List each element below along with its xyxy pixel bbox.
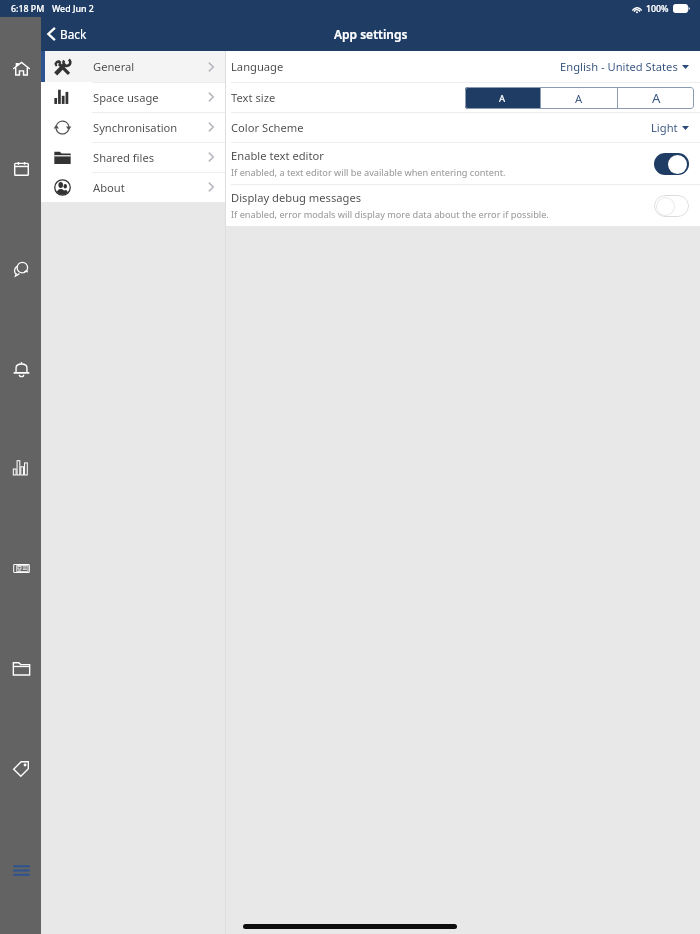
button[interactable]: Statistics xyxy=(5,452,37,484)
button[interactable]: A xyxy=(618,87,694,109)
staticText: Back xyxy=(60,26,87,42)
button[interactable]: Disabled xyxy=(654,195,689,217)
staticText: Space usage xyxy=(93,90,159,105)
button[interactable]: Calendar xyxy=(5,152,37,184)
button[interactable]: About xyxy=(41,172,225,202)
staticText: Color Scheme xyxy=(231,120,304,135)
button[interactable]: Files xyxy=(5,652,37,684)
staticText: A xyxy=(499,92,506,105)
staticText: 100% xyxy=(646,3,669,15)
button[interactable]: Space usage xyxy=(41,82,225,112)
staticText: Display debug messages xyxy=(231,190,362,205)
staticText: About xyxy=(93,180,125,195)
button[interactable]: Back xyxy=(41,21,97,47)
staticText: Synchronisation xyxy=(93,120,178,135)
staticText: Light xyxy=(651,120,678,135)
staticText: Enable text editor xyxy=(231,148,324,163)
staticText: If enabled, a text editor will be availa… xyxy=(231,166,506,179)
button[interactable]: A xyxy=(465,87,540,109)
button[interactable]: News xyxy=(5,552,37,584)
staticText: If enabled, error modals will display mo… xyxy=(231,208,549,221)
button[interactable]: A xyxy=(541,87,617,109)
button[interactable]: Tags xyxy=(5,752,37,784)
button[interactable]: Light xyxy=(645,116,689,139)
button[interactable]: Synchronisation xyxy=(41,112,225,142)
staticText: Shared files xyxy=(93,150,155,165)
staticText: A xyxy=(575,91,583,106)
staticText: Text size xyxy=(231,90,276,105)
button[interactable]: English - United States xyxy=(554,55,689,78)
staticText: Wed Jun 2 xyxy=(52,3,94,15)
staticText: General xyxy=(93,59,135,74)
button[interactable]: Home xyxy=(5,52,37,84)
staticText: Language xyxy=(231,59,284,74)
staticText: App settings xyxy=(334,26,408,42)
button[interactable]: General xyxy=(41,51,225,82)
button[interactable]: Menu xyxy=(5,854,37,886)
staticText: 6:18 PM xyxy=(11,3,45,15)
button[interactable]: Enabled xyxy=(654,153,689,175)
staticText: A xyxy=(652,89,661,107)
button[interactable]: Shared files xyxy=(41,142,225,172)
staticText: English - United States xyxy=(560,59,678,74)
button[interactable]: Notifications xyxy=(5,352,37,384)
button[interactable]: Messages xyxy=(5,252,37,284)
